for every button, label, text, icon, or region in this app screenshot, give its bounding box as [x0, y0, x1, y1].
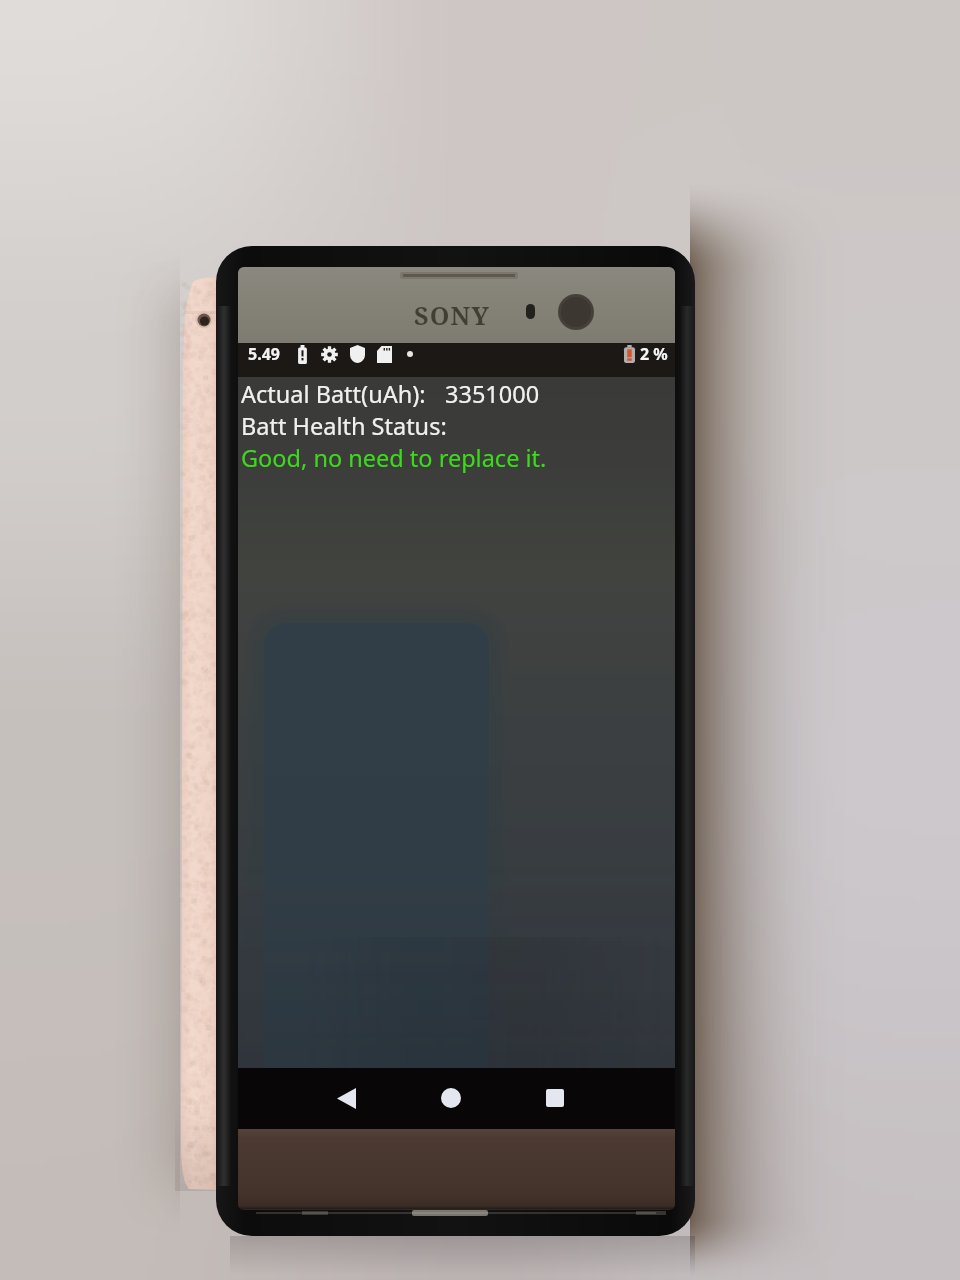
- staticText: Actual Batt(uAh):: [241, 378, 426, 410]
- staticText: SONY: [414, 298, 490, 332]
- staticText: Good, no need to replace it.: [241, 442, 547, 474]
- staticText: 2 %: [640, 343, 668, 365]
- button[interactable]: Recent apps: [528, 1071, 582, 1125]
- button[interactable]: Home: [424, 1071, 478, 1125]
- staticText: 3351000: [445, 378, 540, 410]
- button[interactable]: Back: [319, 1071, 373, 1125]
- staticText: Batt Health Status:: [241, 410, 447, 442]
- staticText: 5.49: [248, 343, 280, 365]
